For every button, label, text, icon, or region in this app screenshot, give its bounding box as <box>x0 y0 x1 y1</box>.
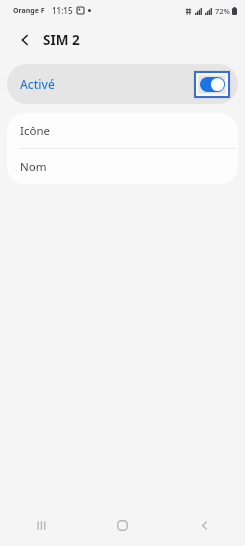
staticText: Icône <box>20 123 50 139</box>
staticText: 72% <box>215 6 230 16</box>
staticText: Activé <box>20 76 55 92</box>
button[interactable]: Back <box>12 27 38 53</box>
button[interactable]: Nom <box>7 149 238 184</box>
button[interactable]: Home <box>81 505 163 546</box>
button[interactable]: Activé toggle <box>195 72 229 97</box>
button[interactable]: Recents <box>0 505 81 546</box>
button[interactable]: Back <box>163 505 245 546</box>
button[interactable]: Icône <box>7 113 238 148</box>
staticText: 11:15 <box>52 5 73 16</box>
button[interactable]: Activé <box>7 64 238 104</box>
staticText: Nom <box>20 159 47 175</box>
staticText: Orange F <box>13 6 45 16</box>
staticText: SIM 2 <box>43 31 80 49</box>
